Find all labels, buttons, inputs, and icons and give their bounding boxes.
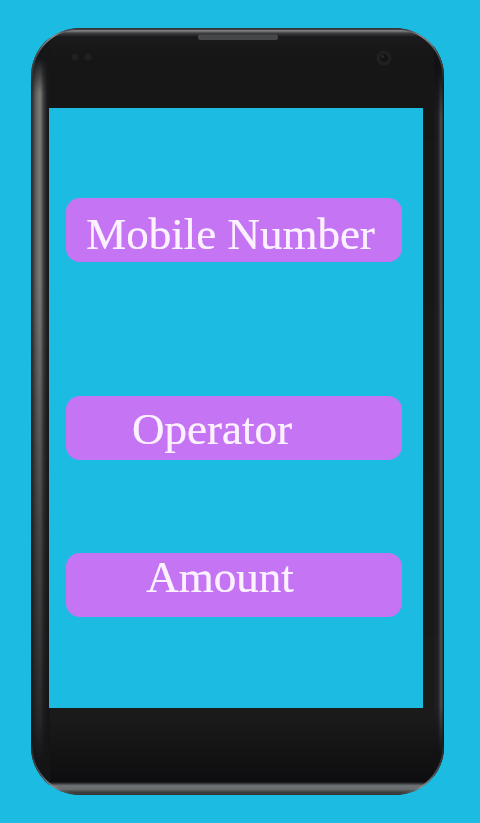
staticText: Amount [146,553,294,602]
button[interactable]: Amount [66,553,402,617]
staticText: Mobile Number [86,209,375,259]
button[interactable]: Operator [66,396,402,460]
other: Recharge form [49,108,423,708]
button[interactable]: Mobile Number [66,198,402,262]
staticText: Operator [132,404,292,454]
